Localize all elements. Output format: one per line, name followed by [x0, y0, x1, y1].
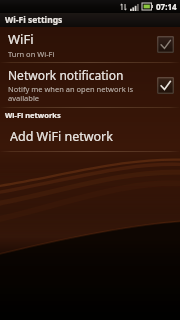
staticText: Notify me when an open network is availa… — [8, 84, 134, 104]
staticText: Wi-Fi networks — [5, 110, 61, 120]
button[interactable]: Checked — [157, 77, 174, 94]
button[interactable]: Unchecked — [157, 36, 174, 53]
staticText: 07:14 — [156, 1, 177, 12]
staticText: Add WiFi network — [10, 128, 113, 145]
staticText: Wi-Fi settings — [5, 14, 63, 26]
staticText: WiFi — [8, 30, 34, 48]
button[interactable]: Add WiFi network — [0, 121, 180, 151]
staticText: Turn on Wi-Fi — [8, 49, 55, 59]
button[interactable]: WiFi — [0, 27, 180, 62]
button[interactable]: Network notification — [0, 63, 180, 107]
staticText: Network notification — [8, 67, 124, 83]
